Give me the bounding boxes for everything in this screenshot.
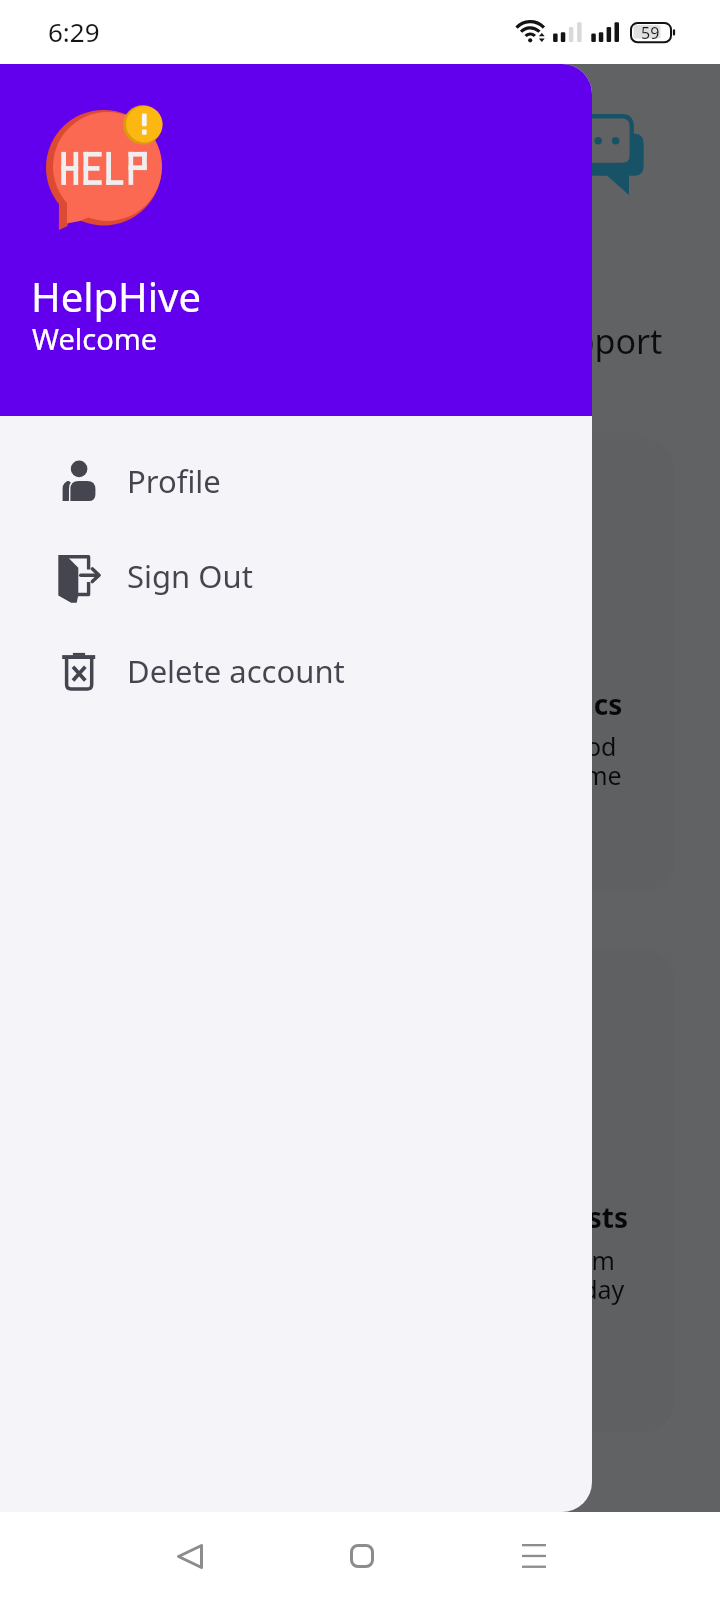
button[interactable]: Delete account <box>0 623 592 718</box>
button[interactable]: Home <box>316 1522 408 1590</box>
staticText: HelpHive <box>31 269 201 323</box>
staticText: Basics <box>536 685 623 723</box>
button[interactable]: Profile <box>0 433 592 528</box>
staticText: method at home <box>524 729 622 792</box>
button[interactable]: Requests <box>46 949 674 1432</box>
staticText: 59 <box>641 22 660 44</box>
staticText: Welcome <box>32 319 158 358</box>
staticText: 6:29 <box>48 14 100 49</box>
staticText: Sign Out <box>127 555 253 597</box>
button[interactable]: Sign Out <box>0 528 592 623</box>
staticText: Support <box>534 318 663 364</box>
button[interactable]: Back <box>144 1522 236 1590</box>
staticText: Delete account <box>127 650 345 692</box>
button[interactable]: Recent apps <box>488 1522 580 1590</box>
staticText: Requests <box>500 1198 628 1236</box>
staticText: from today <box>558 1243 625 1306</box>
button[interactable]: Basics <box>46 439 674 892</box>
staticText: Profile <box>127 460 221 502</box>
